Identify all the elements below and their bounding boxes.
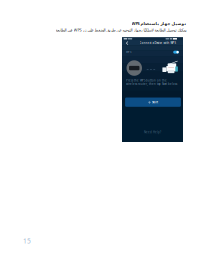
- staticText: توصيل جهاز باستخدام WPS: [131, 21, 186, 26]
- staticText: 15: [23, 236, 31, 245]
- button[interactable]: Back: [125, 40, 130, 46]
- staticText: يمكنك توصيل الطابعة لاسلكيًا بجهاز التوج…: [55, 27, 186, 32]
- staticText: Need Help?: [144, 130, 161, 134]
- staticText: Connect a Device with WPS: [139, 41, 175, 45]
- button[interactable]: Start: [125, 97, 181, 107]
- button[interactable]: WPS on: [173, 51, 179, 54]
- button[interactable]: Need Help?: [122, 130, 183, 134]
- staticText: WPS: [126, 50, 131, 54]
- staticText: Start: [152, 100, 158, 104]
- staticText: Press the WPS button on the wireless rou…: [126, 79, 178, 86]
